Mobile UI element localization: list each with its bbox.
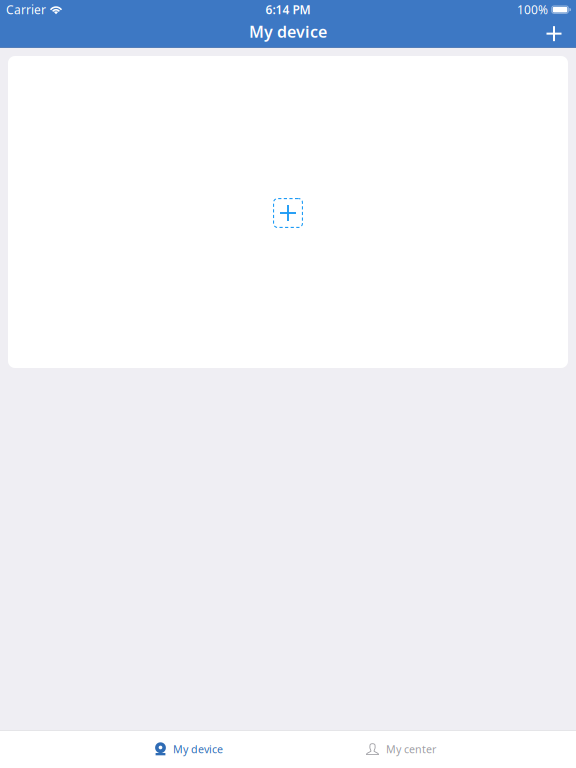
staticText: My device	[249, 21, 327, 42]
staticText: My center	[386, 742, 436, 756]
staticText: Carrier	[6, 2, 46, 18]
button[interactable]: Add device	[532, 20, 576, 48]
staticText: 6:14 PM	[265, 2, 310, 18]
button[interactable]: My device	[0, 730, 288, 767]
button[interactable]: Add device	[273, 196, 303, 228]
staticText: My device	[173, 742, 223, 756]
button[interactable]: My center	[288, 730, 576, 767]
staticText: 100%	[517, 2, 548, 18]
